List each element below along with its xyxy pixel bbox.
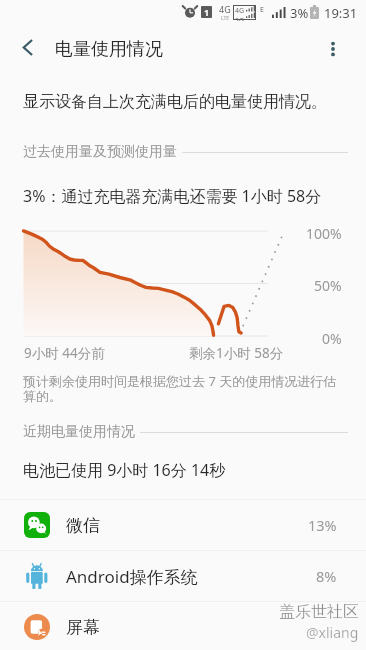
staticText: 显示设备自上次充满电后的电量使用情况。 [23, 92, 327, 112]
staticText: 8% [316, 566, 337, 586]
staticText: 微信 [66, 515, 100, 536]
staticText: 4G [235, 6, 245, 16]
staticText: 1 [204, 6, 210, 18]
staticText: 屏幕 [66, 617, 100, 638]
staticText: Android操作系统 [66, 565, 198, 588]
staticText: 9小时 44分前 [24, 344, 105, 362]
staticText: 剩余1小时 58分 [189, 344, 284, 362]
staticText: 电量使用情况 [55, 38, 163, 61]
staticText: 100% [306, 224, 342, 243]
staticText: 19:31 [324, 4, 358, 22]
button[interactable]: More options [311, 27, 355, 71]
staticText: 2G [235, 16, 245, 21]
staticText: 近期电量使用情况 [23, 423, 135, 441]
button[interactable]: 微信 [0, 500, 366, 550]
staticText: 过去使用量及预测使用量 [23, 143, 177, 161]
button[interactable]: 屏幕 [0, 602, 366, 650]
staticText: 电池已使用 9小时 16分 14秒 [23, 459, 226, 481]
staticText: 50% [314, 276, 342, 295]
staticText: 盖乐世社区 [279, 602, 359, 622]
staticText: LTE [221, 15, 230, 22]
staticText: E [260, 5, 264, 15]
staticText: 预计剩余使用时间是根据您过去 7 天的使用情况进行估算的。 [23, 372, 343, 405]
staticText: 3%：通过充电器充满电还需要 1小时 58分 [23, 185, 322, 207]
staticText: 3% [290, 4, 309, 22]
staticText: 4G [219, 3, 231, 15]
button[interactable]: Back [5, 25, 49, 69]
staticText: 0% [322, 329, 342, 348]
staticText: @xliang [306, 623, 359, 642]
staticText: 13% [308, 515, 337, 535]
button[interactable]: Android操作系统 [0, 551, 366, 601]
